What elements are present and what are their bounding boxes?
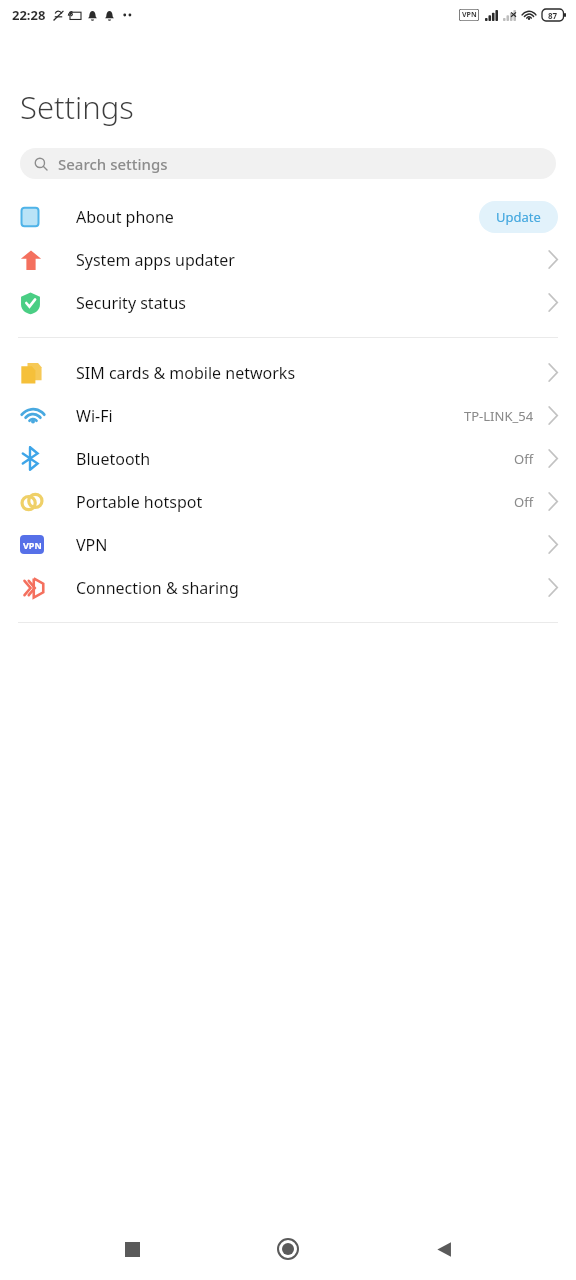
staticText: 22:28 — [12, 6, 46, 24]
button[interactable]: Connection & sharing — [0, 566, 576, 609]
button[interactable]: Portable hotspot — [0, 480, 576, 523]
staticText: Connection & sharing — [76, 577, 548, 599]
button[interactable]: Update — [479, 201, 558, 233]
staticText: Portable hotspot — [76, 491, 514, 513]
button[interactable]: Recent apps — [108, 1225, 156, 1273]
button[interactable]: About phone — [0, 195, 576, 238]
staticText: VPN — [462, 10, 477, 20]
staticText: Search settings — [58, 154, 168, 174]
staticText: Off — [514, 493, 534, 511]
button[interactable]: Wi-Fi — [0, 394, 576, 437]
staticText: Update — [496, 208, 541, 226]
staticText: 87 — [548, 10, 558, 21]
staticText: About phone — [76, 206, 479, 228]
button[interactable]: Security status — [0, 281, 576, 324]
button[interactable]: Home — [264, 1225, 312, 1273]
button[interactable]: VPN — [0, 523, 576, 566]
staticText: SIM cards & mobile networks — [76, 362, 548, 384]
staticText: Bluetooth — [76, 448, 514, 470]
staticText: Security status — [76, 292, 548, 314]
staticText: Off — [514, 450, 534, 468]
staticText: VPN — [76, 534, 548, 556]
staticText: Wi-Fi — [76, 405, 464, 427]
button[interactable]: Search settings — [20, 148, 556, 179]
button[interactable]: Back — [420, 1225, 468, 1273]
staticText: TP-LINK_54 — [464, 407, 534, 425]
staticText: VPN — [23, 539, 42, 551]
staticText: System apps updater — [76, 249, 548, 271]
staticText: Settings — [20, 86, 134, 128]
button[interactable]: SIM cards & mobile networks — [0, 351, 576, 394]
button[interactable]: System apps updater — [0, 238, 576, 281]
button[interactable]: Bluetooth — [0, 437, 576, 480]
